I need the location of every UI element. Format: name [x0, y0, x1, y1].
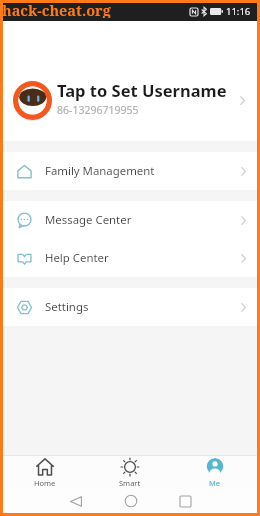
staticText: Family Management [45, 163, 155, 179]
button[interactable]: Settings [3, 288, 257, 326]
staticText: hack-cheat.org [2, 0, 111, 18]
staticText: Home [34, 478, 56, 488]
staticText: Smart [119, 478, 141, 488]
button[interactable]: Smart [87, 456, 172, 489]
button[interactable]: Help Center [3, 239, 257, 277]
staticText: Settings [45, 299, 89, 315]
button[interactable]: Me [172, 456, 257, 489]
staticText: 86-13296719955 [57, 103, 139, 117]
staticText: Help Center [45, 250, 109, 266]
button[interactable]: Recent apps [169, 489, 202, 513]
staticText: 11:16 [226, 5, 251, 18]
staticText: Message Center [45, 212, 132, 228]
staticText: Tap to Set Username [57, 79, 227, 101]
button[interactable]: Home [3, 456, 87, 489]
button[interactable]: Message Center [3, 201, 257, 239]
button[interactable]: Family Management [3, 152, 257, 190]
button[interactable]: Tap to Set Username [3, 81, 257, 141]
button[interactable]: Back [59, 489, 92, 513]
button[interactable]: Home [114, 489, 147, 513]
staticText: Me [209, 478, 221, 488]
